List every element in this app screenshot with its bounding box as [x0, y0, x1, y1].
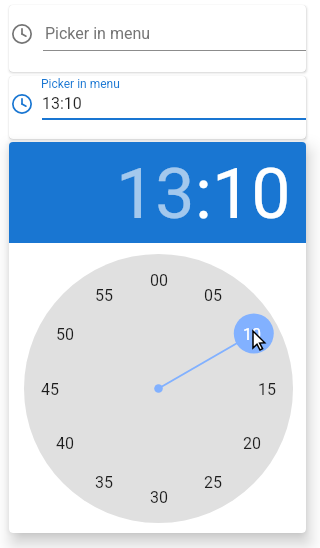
staticText: 35 [95, 473, 113, 492]
staticText: 00 [150, 271, 168, 290]
staticText: 25 [204, 473, 222, 492]
staticText: 40 [56, 434, 74, 453]
button[interactable]: 05 [193, 281, 233, 309]
button[interactable]: 40 [45, 429, 85, 457]
staticText: 55 [95, 286, 113, 305]
button[interactable]: 45 [30, 375, 70, 403]
staticText: 15 [258, 380, 276, 399]
button[interactable]: 10 [232, 320, 272, 348]
staticText: Picker in menu [45, 24, 151, 43]
staticText: 10 [243, 325, 261, 344]
button[interactable]: 35 [84, 468, 124, 496]
staticText: Picker in menu [41, 77, 120, 91]
button[interactable]: 25 [193, 468, 233, 496]
staticText: : [195, 153, 212, 235]
staticText: 13:10 [42, 94, 82, 113]
button[interactable]: 30 [139, 483, 179, 511]
button[interactable]: 15 [247, 375, 287, 403]
staticText: 45 [41, 380, 59, 399]
button[interactable]: Picker in menu [9, 5, 306, 72]
button[interactable]: Picker in menu [9, 76, 306, 139]
button[interactable]: 10 [212, 153, 291, 235]
button[interactable]: 50 [45, 320, 85, 348]
staticText: 30 [150, 488, 168, 507]
staticText: 05 [204, 286, 222, 305]
other: Pointer [253, 331, 269, 353]
staticText: 20 [243, 434, 261, 453]
button[interactable]: 55 [84, 281, 124, 309]
button[interactable]: 20 [232, 429, 272, 457]
button[interactable]: 13 [116, 153, 195, 235]
staticText: 50 [56, 325, 74, 344]
button[interactable]: 00 [139, 266, 179, 294]
